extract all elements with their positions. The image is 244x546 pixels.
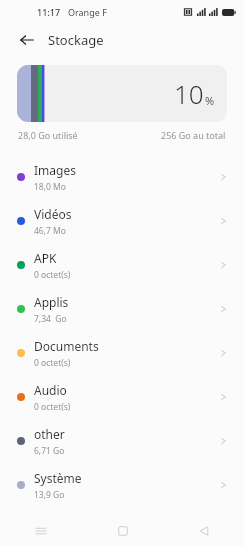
staticText: 0 octet(s)	[34, 357, 71, 369]
button[interactable]: Applis	[0, 287, 244, 331]
staticText: Système	[34, 470, 82, 486]
staticText: Images	[34, 162, 76, 178]
button[interactable]: Documents	[0, 331, 244, 375]
button[interactable]: Home	[82, 515, 163, 546]
staticText: other	[34, 426, 65, 442]
staticText: 6,71 Go	[34, 445, 65, 457]
button[interactable]: Système	[0, 463, 244, 507]
staticText: 256 Go au total	[161, 129, 226, 141]
staticText: 0 octet(s)	[34, 401, 71, 413]
button[interactable]: Images	[0, 155, 244, 199]
button[interactable]: Back	[163, 515, 244, 546]
button[interactable]: Audio	[0, 375, 244, 419]
button[interactable]: other	[0, 419, 244, 463]
staticText: 0 octet(s)	[34, 269, 71, 281]
staticText: Applis	[34, 294, 69, 310]
staticText: 13,9 Go	[34, 489, 65, 501]
staticText: APK	[34, 250, 57, 266]
staticText: 18,0 Mo	[34, 181, 66, 193]
staticText: Audio	[34, 382, 67, 398]
button[interactable]: Back	[14, 27, 40, 53]
staticText: Orange F	[68, 6, 107, 18]
staticText: 28,0 Go utilisé	[18, 129, 78, 141]
button[interactable]: 10	[17, 65, 227, 122]
staticText: Stockage	[48, 31, 104, 49]
button[interactable]: Vidéos	[0, 199, 244, 243]
staticText: 11:17	[37, 6, 61, 18]
staticText: 7,34 Go	[34, 313, 67, 325]
button[interactable]: Recent apps	[0, 515, 82, 546]
staticText: Documents	[34, 338, 99, 354]
staticText: 46,7 Mo	[34, 225, 66, 237]
staticText: Vidéos	[34, 206, 72, 222]
staticText: 10	[174, 76, 204, 111]
button[interactable]: APK	[0, 243, 244, 287]
staticText: %	[205, 93, 215, 108]
